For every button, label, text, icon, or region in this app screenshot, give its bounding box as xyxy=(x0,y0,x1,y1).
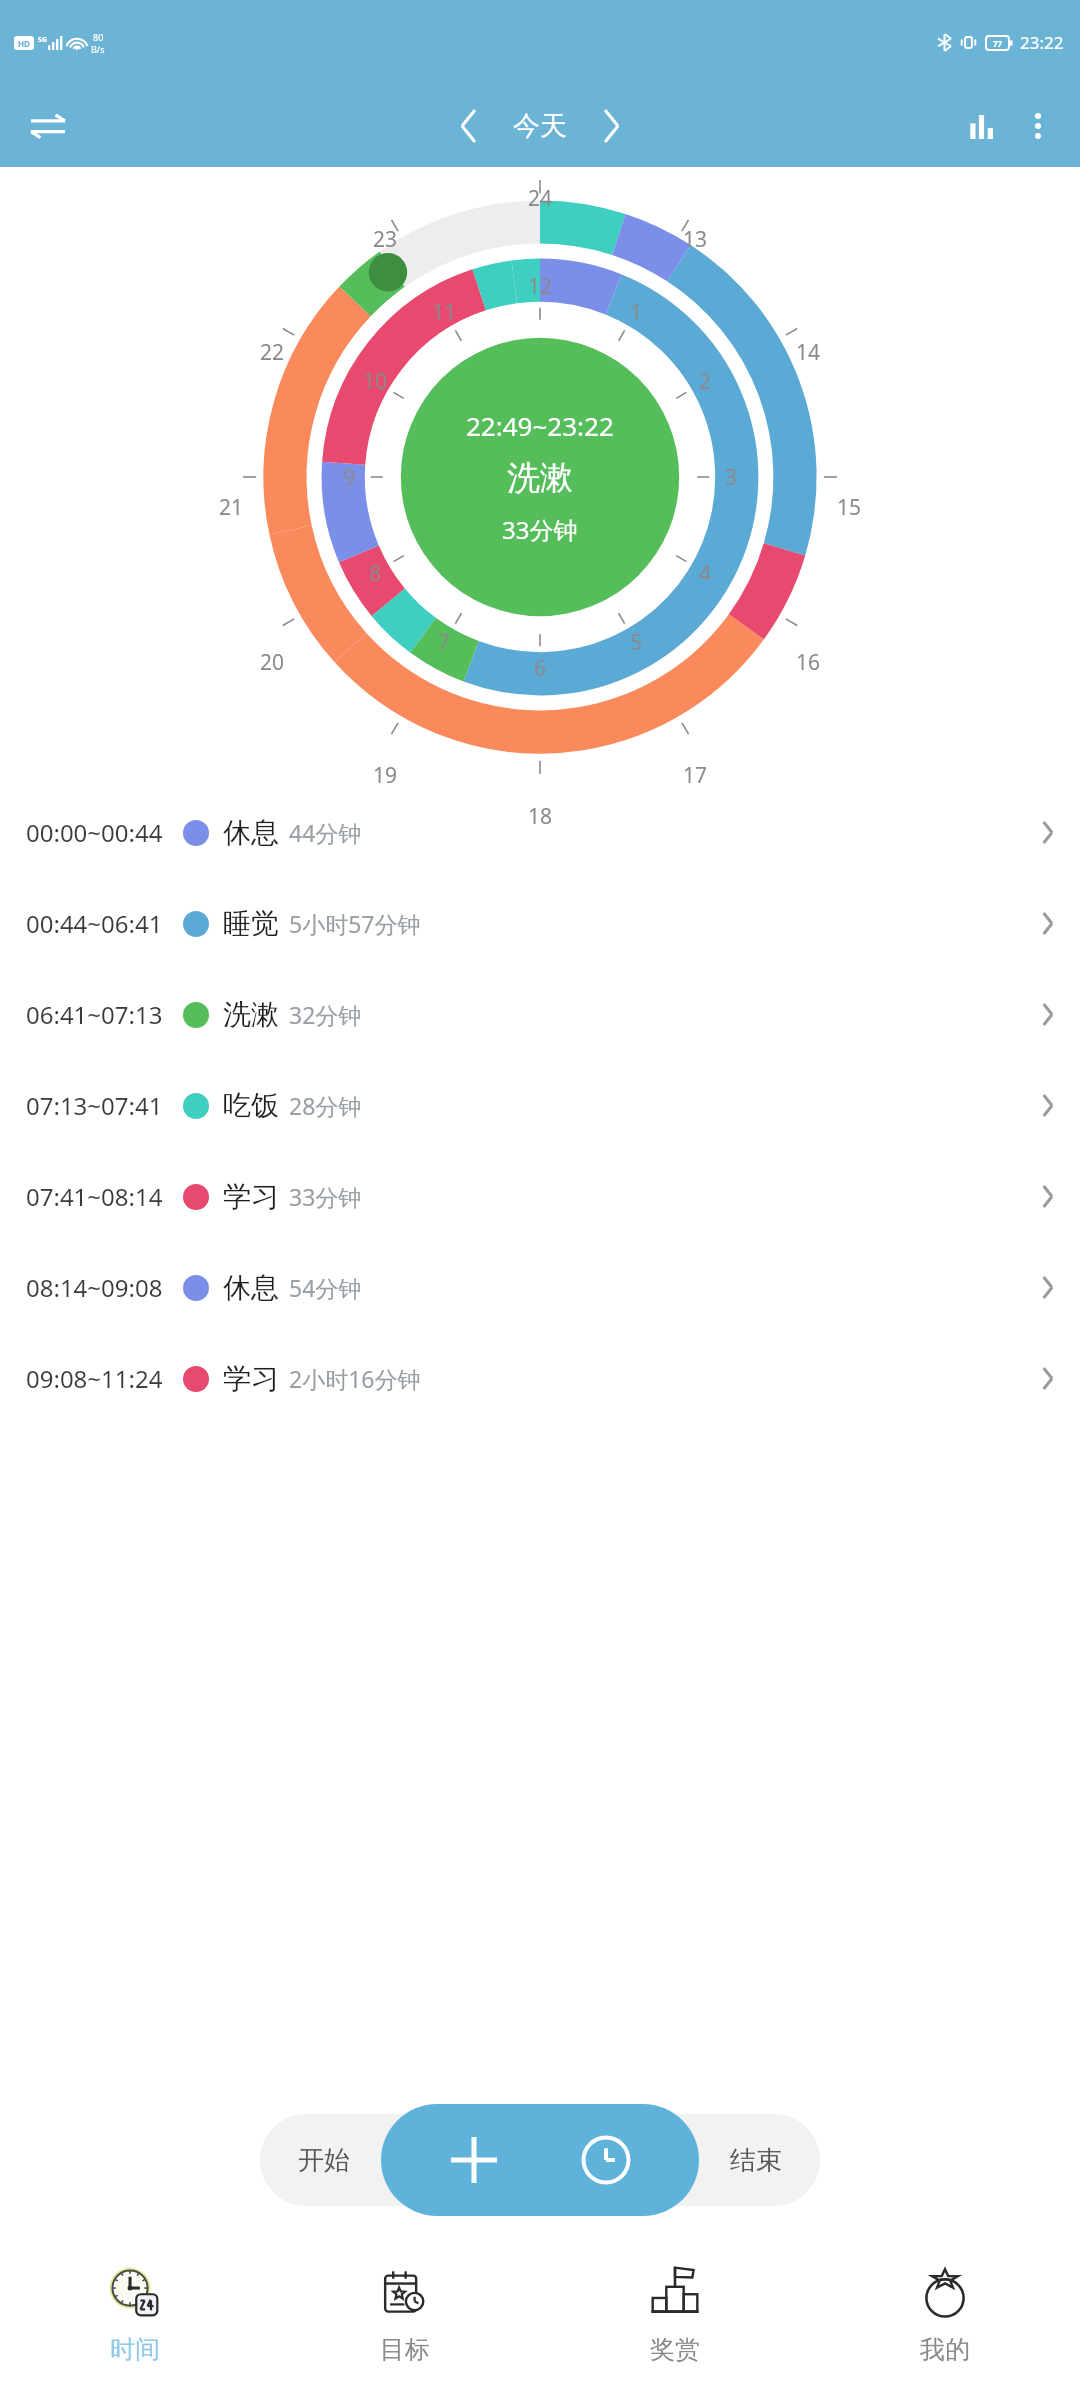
staticText: 22:49~23:22 xyxy=(466,408,614,443)
button[interactable]: Add record xyxy=(435,2121,513,2199)
staticText: 我的 xyxy=(920,2334,970,2365)
staticText: 28分钟 xyxy=(289,1090,362,1121)
staticText: 11 xyxy=(432,298,457,326)
staticText: 23 xyxy=(373,225,398,253)
staticText: 结束 xyxy=(730,2144,782,2177)
staticText: 17 xyxy=(683,761,708,789)
staticText: 学习 xyxy=(223,1361,279,1396)
staticText: 9 xyxy=(343,463,356,491)
staticText: 洗漱 xyxy=(507,457,573,499)
staticText: 10 xyxy=(363,367,388,395)
staticText: 吃饭 xyxy=(223,1088,279,1123)
button[interactable]: 结束 xyxy=(730,2144,782,2177)
staticText: 16 xyxy=(796,648,821,676)
staticText: HD xyxy=(18,38,30,49)
staticText: 时间 xyxy=(110,2334,160,2365)
staticText: 14 xyxy=(796,338,821,366)
staticText: 07:41~08:14 xyxy=(26,1180,163,1213)
staticText: 5小时57分钟 xyxy=(289,908,421,939)
staticText: 06:41~07:13 xyxy=(26,998,163,1031)
staticText: 15 xyxy=(837,493,862,521)
staticText: 44分钟 xyxy=(289,817,362,848)
button[interactable]: 07:13~07:41 xyxy=(0,1060,1080,1151)
button[interactable]: 07:41~08:14 xyxy=(0,1151,1080,1242)
staticText: 33分钟 xyxy=(289,1181,362,1212)
button[interactable]: 今天 xyxy=(495,109,585,143)
staticText: 19 xyxy=(373,761,398,789)
button[interactable]: 我的 xyxy=(810,2238,1080,2388)
button[interactable]: More options xyxy=(1010,98,1066,154)
staticText: 奖赏 xyxy=(650,2334,700,2365)
staticText: 00:00~00:44 xyxy=(26,816,163,849)
staticText: 77 xyxy=(993,38,1003,49)
staticText: 目标 xyxy=(380,2334,430,2365)
staticText: 54分钟 xyxy=(289,1272,362,1303)
staticText: 12 xyxy=(528,272,553,300)
button[interactable]: Previous day xyxy=(443,100,495,152)
staticText: 8 xyxy=(369,559,382,587)
staticText: 20 xyxy=(260,648,285,676)
button[interactable]: Statistics xyxy=(954,98,1010,154)
staticText: 洗漱 xyxy=(223,997,279,1032)
button[interactable]: 00:44~06:41 xyxy=(0,878,1080,969)
staticText: 22 xyxy=(260,338,285,366)
button[interactable]: 09:08~11:24 xyxy=(0,1333,1080,1424)
staticText: 学习 xyxy=(223,1179,279,1214)
staticText: 3 xyxy=(725,463,738,491)
staticText: 2小时16分钟 xyxy=(289,1363,421,1394)
staticText: 07:13~07:41 xyxy=(26,1089,163,1122)
button[interactable]: 00:00~00:44 xyxy=(0,787,1080,878)
staticText: 2 xyxy=(699,367,712,395)
staticText: 21 xyxy=(219,493,244,521)
staticText: B/s xyxy=(91,43,105,55)
staticText: 13 xyxy=(683,225,708,253)
staticText: 24 xyxy=(528,184,553,212)
button[interactable]: 奖赏 xyxy=(540,2238,810,2388)
staticText: 80 xyxy=(93,31,104,43)
button[interactable]: 时间 xyxy=(0,2238,270,2388)
button[interactable]: 开始 xyxy=(298,2144,350,2177)
staticText: 睡觉 xyxy=(223,906,279,941)
staticText: 5 xyxy=(630,628,643,656)
staticText: 今天 xyxy=(513,109,567,143)
staticText: 6 xyxy=(534,654,547,682)
staticText: 18 xyxy=(528,802,553,830)
staticText: 32分钟 xyxy=(289,999,362,1030)
staticText: 7 xyxy=(438,628,451,656)
button[interactable]: Timer xyxy=(567,2121,645,2199)
button[interactable]: 06:41~07:13 xyxy=(0,969,1080,1060)
button[interactable]: 目标 xyxy=(270,2238,540,2388)
button[interactable]: Switch view xyxy=(20,98,76,154)
staticText: 4 xyxy=(699,559,712,587)
staticText: 00:44~06:41 xyxy=(26,907,163,940)
staticText: 开始 xyxy=(298,2144,350,2177)
button[interactable]: 08:14~09:08 xyxy=(0,1242,1080,1333)
staticText: 1 xyxy=(630,298,643,326)
staticText: 09:08~11:24 xyxy=(26,1362,163,1395)
button[interactable]: Next day xyxy=(585,100,637,152)
staticText: 5G xyxy=(38,35,48,45)
staticText: 08:14~09:08 xyxy=(26,1271,163,1304)
staticText: 休息 xyxy=(223,815,279,850)
staticText: 33分钟 xyxy=(502,513,578,546)
staticText: 休息 xyxy=(223,1270,279,1305)
staticText: 23:22 xyxy=(1020,31,1064,54)
